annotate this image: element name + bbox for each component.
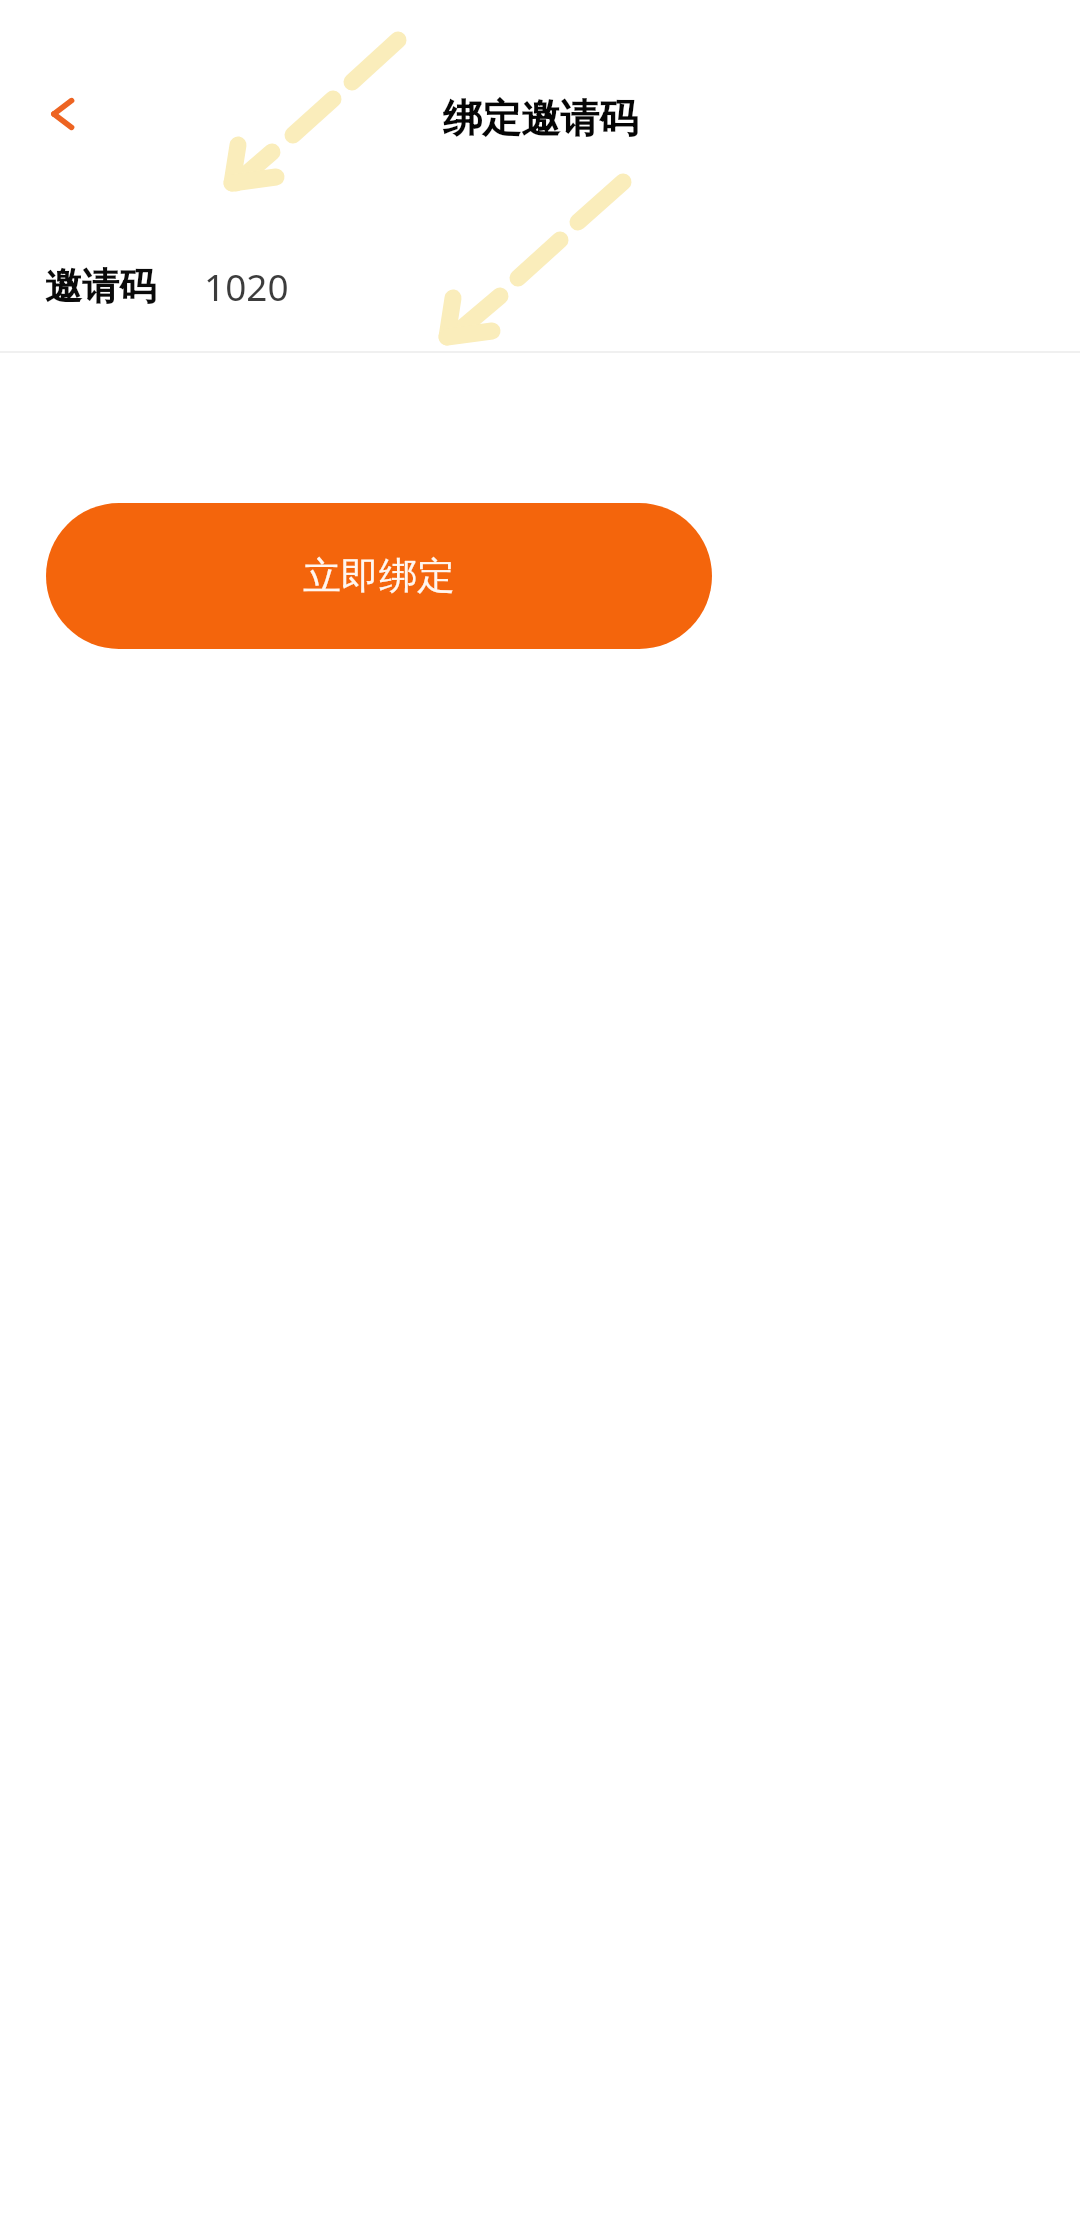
button[interactable]: 邀请码 <box>0 220 1080 352</box>
button[interactable]: Back <box>14 66 110 162</box>
staticText: 邀请码 <box>45 263 156 310</box>
staticText: 1020 <box>204 261 289 311</box>
staticText: 立即绑定 <box>303 552 455 600</box>
button[interactable]: 立即绑定 <box>46 503 712 649</box>
staticText: 绑定邀请码 <box>443 94 638 143</box>
